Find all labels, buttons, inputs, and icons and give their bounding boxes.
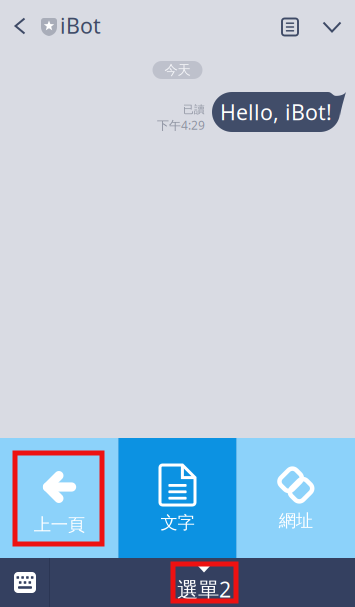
staticText: 選單2: [177, 575, 231, 603]
button[interactable]: Back: [1, 4, 39, 48]
button[interactable]: 網址: [237, 438, 355, 558]
button[interactable]: Collapse: [310, 5, 354, 49]
staticText: 上一頁: [34, 514, 85, 535]
staticText: 文字: [160, 512, 194, 533]
button[interactable]: Keyboard: [14, 572, 36, 593]
staticText: 已讀: [183, 103, 205, 116]
staticText: iBot: [60, 11, 101, 40]
staticText: Hello, iBot!: [220, 98, 332, 126]
button[interactable]: 選單2: [172, 564, 236, 601]
staticText: 下午4:29: [157, 117, 205, 133]
button[interactable]: Chat transcript: [268, 5, 312, 49]
button[interactable]: iBot: [41, 5, 109, 49]
button[interactable]: 文字: [118, 438, 237, 558]
button[interactable]: 上一頁: [0, 438, 118, 558]
staticText: 今天: [164, 62, 190, 78]
staticText: 網址: [279, 510, 313, 531]
